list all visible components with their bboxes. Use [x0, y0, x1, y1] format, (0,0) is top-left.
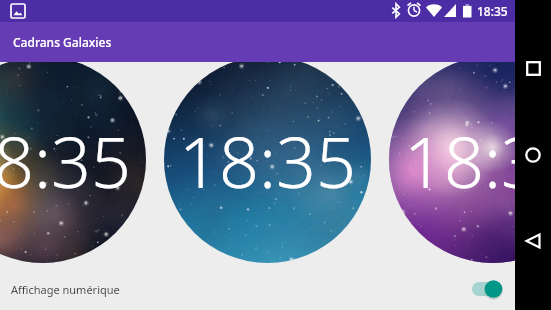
button[interactable]: Back: [515, 198, 551, 284]
button[interactable]: Affichage numérique: [0, 268, 515, 310]
staticText: Cadrans Galaxies: [13, 34, 112, 50]
button[interactable]: Recent apps: [515, 25, 551, 112]
staticText: 18:35: [477, 3, 508, 19]
staticText: 18:35: [179, 113, 356, 208]
staticText: 18:35: [404, 113, 551, 208]
button[interactable]: 18:35: [0, 56, 146, 263]
button[interactable]: 18:35: [389, 56, 551, 263]
staticText: 18:35: [0, 113, 131, 208]
button[interactable]: 18:35: [164, 56, 371, 263]
button[interactable]: Home: [515, 112, 551, 198]
staticText: Affichage numérique: [11, 282, 120, 297]
